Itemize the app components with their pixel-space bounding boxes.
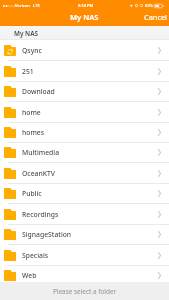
staticText: SignageStation [22, 230, 72, 239]
staticText: 251 [22, 67, 34, 76]
button[interactable]: Cancel [138, 10, 169, 24]
staticText: home [22, 108, 41, 117]
staticText: Multimedia [22, 148, 60, 157]
button[interactable]: 251 [0, 62, 169, 82]
staticText: Please select a folder [53, 287, 117, 296]
staticText: Qsync [22, 46, 42, 55]
staticText: Download [22, 87, 55, 96]
button[interactable]: My NAS [0, 26, 169, 40]
button[interactable]: Recordings [0, 205, 169, 225]
staticText: My NAS [14, 29, 38, 38]
staticText: My NAS [70, 12, 99, 22]
staticText: LTE [33, 3, 40, 9]
staticText: Cancel [144, 12, 168, 22]
button[interactable]: homes [0, 123, 169, 143]
button[interactable]: Download [0, 82, 169, 102]
staticText: Verizon [15, 3, 30, 9]
button[interactable]: Qsync [0, 41, 169, 61]
staticText: Specials [22, 251, 49, 260]
staticText: homes [22, 128, 45, 137]
button[interactable]: SignageStation [0, 225, 169, 245]
staticText: 5:14 PM [78, 3, 94, 8]
staticText: Public [22, 189, 42, 198]
button[interactable]: Public [0, 184, 169, 204]
staticText: OceanKTV [22, 169, 56, 178]
staticText: 63% [145, 3, 153, 8]
staticText: Web [22, 271, 37, 280]
button[interactable]: OceanKTV [0, 164, 169, 184]
staticText: Recordings [22, 210, 59, 219]
button[interactable]: home [0, 103, 169, 123]
button[interactable]: Multimedia [0, 143, 169, 163]
button[interactable]: Specials [0, 246, 169, 266]
button[interactable]: Web [0, 266, 169, 286]
